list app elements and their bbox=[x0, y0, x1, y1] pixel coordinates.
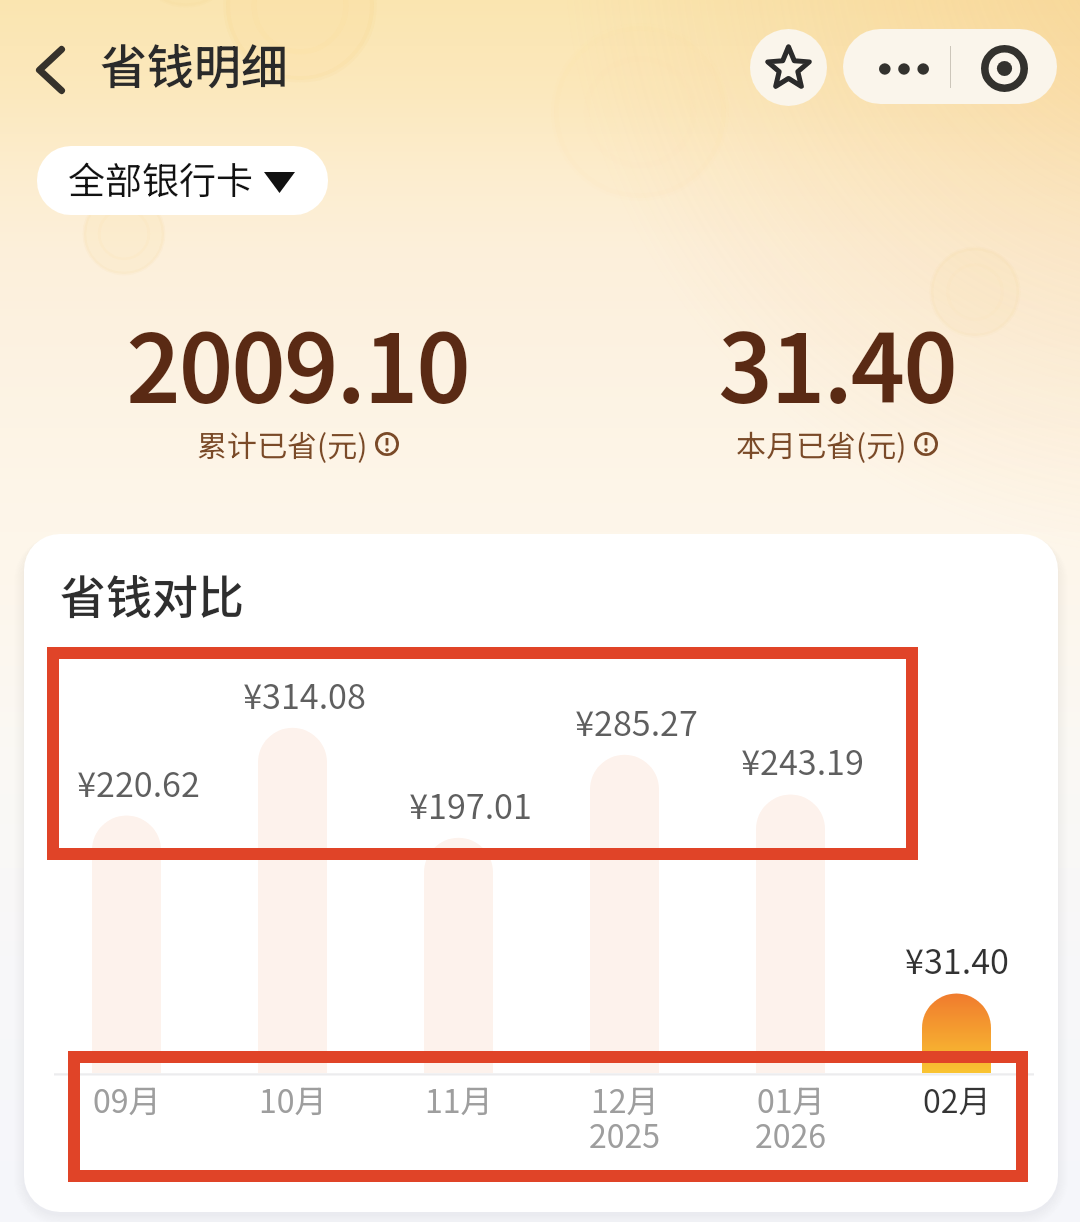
staticText: 01月 bbox=[757, 1076, 825, 1122]
staticText: ¥31.40 bbox=[905, 935, 1009, 984]
staticText: ¥197.01 bbox=[409, 780, 532, 829]
button[interactable]: Favorite bbox=[750, 29, 827, 106]
button[interactable]: 本月已省(元) bbox=[736, 422, 938, 465]
staticText: 本月已省(元) bbox=[736, 422, 907, 465]
staticText: 省钱明细 bbox=[100, 29, 288, 97]
button[interactable]: 全部银行卡 bbox=[37, 146, 328, 215]
button[interactable]: More options bbox=[843, 29, 950, 104]
staticText: 09月 bbox=[93, 1076, 161, 1122]
staticText: ¥243.19 bbox=[741, 736, 864, 785]
staticText: 累计已省(元) bbox=[197, 422, 368, 465]
staticText: 省钱对比 bbox=[60, 561, 244, 628]
button[interactable]: 累计已省(元) bbox=[197, 422, 399, 465]
staticText: 11月 bbox=[425, 1076, 493, 1122]
button[interactable]: Close mini program bbox=[951, 29, 1057, 104]
staticText: 2026 bbox=[755, 1111, 827, 1157]
button[interactable]: Back bbox=[15, 35, 85, 105]
staticText: 2025 bbox=[589, 1111, 661, 1157]
staticText: ¥285.27 bbox=[575, 697, 698, 746]
staticText: 12月 bbox=[591, 1076, 659, 1122]
staticText: 2009.10 bbox=[126, 294, 469, 430]
staticText: 31.40 bbox=[718, 294, 956, 430]
staticText: ¥314.08 bbox=[243, 670, 366, 719]
staticText: 全部银行卡 bbox=[68, 151, 253, 205]
staticText: 02月 bbox=[923, 1076, 991, 1122]
staticText: ¥220.62 bbox=[77, 758, 200, 807]
staticText: 10月 bbox=[259, 1076, 327, 1122]
